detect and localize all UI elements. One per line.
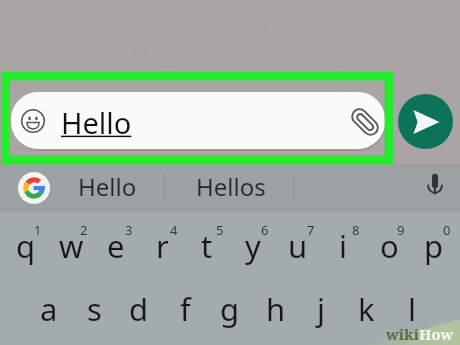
button[interactable]: q: [3, 219, 49, 273]
staticText: 6: [261, 221, 269, 239]
button[interactable]: e: [93, 219, 139, 273]
staticText: 8: [352, 221, 360, 239]
button[interactable]: Hellos: [196, 170, 266, 203]
staticText: g: [220, 288, 240, 330]
staticText: r: [156, 225, 169, 267]
staticText: 4: [170, 221, 178, 239]
staticText: d: [129, 288, 149, 330]
staticText: 3: [125, 221, 133, 239]
button[interactable]: j: [298, 282, 344, 336]
button[interactable]: p: [411, 219, 457, 273]
staticText: 9: [397, 221, 405, 239]
button[interactable]: d: [116, 282, 162, 336]
staticText: 1: [34, 221, 42, 239]
button[interactable]: w: [48, 219, 94, 273]
button[interactable]: Send: [398, 94, 453, 149]
staticText: y: [245, 225, 261, 267]
button[interactable]: Emoji: [21, 109, 45, 133]
staticText: e: [107, 225, 125, 267]
staticText: q: [16, 225, 36, 267]
staticText: h: [266, 288, 286, 330]
staticText: 5: [216, 221, 224, 239]
button[interactable]: a: [26, 282, 72, 336]
staticText: f: [180, 288, 191, 330]
button[interactable]: r: [139, 219, 185, 273]
staticText: l: [408, 288, 416, 330]
button[interactable]: l: [389, 282, 435, 336]
staticText: i: [339, 225, 347, 267]
button[interactable]: Hello: [78, 170, 137, 203]
staticText: t: [201, 225, 213, 267]
staticText: o: [380, 225, 399, 267]
button[interactable]: i: [320, 219, 366, 273]
staticText: 2: [80, 221, 88, 239]
staticText: Hello: [61, 103, 132, 142]
staticText: s: [87, 288, 102, 330]
staticText: p: [424, 225, 444, 267]
staticText: 7: [307, 221, 315, 239]
button[interactable]: g: [207, 282, 253, 336]
button[interactable]: t: [184, 219, 230, 273]
staticText: wiki: [386, 324, 419, 344]
button[interactable]: Voice input: [422, 172, 448, 198]
staticText: k: [358, 288, 375, 330]
staticText: 0: [443, 221, 451, 239]
button[interactable]: y: [230, 219, 276, 273]
button[interactable]: Google: [18, 172, 50, 204]
button[interactable]: s: [71, 282, 117, 336]
button[interactable]: u: [275, 219, 321, 273]
button[interactable]: Attach: [348, 105, 382, 139]
button[interactable]: o: [366, 219, 412, 273]
staticText: a: [40, 288, 58, 330]
button[interactable]: h: [253, 282, 299, 336]
staticText: j: [317, 288, 325, 330]
button[interactable]: Emoji: [11, 92, 385, 149]
staticText: u: [288, 225, 308, 267]
staticText: How: [419, 324, 454, 344]
staticText: w: [59, 225, 84, 267]
button[interactable]: k: [343, 282, 389, 336]
button[interactable]: f: [162, 282, 208, 336]
